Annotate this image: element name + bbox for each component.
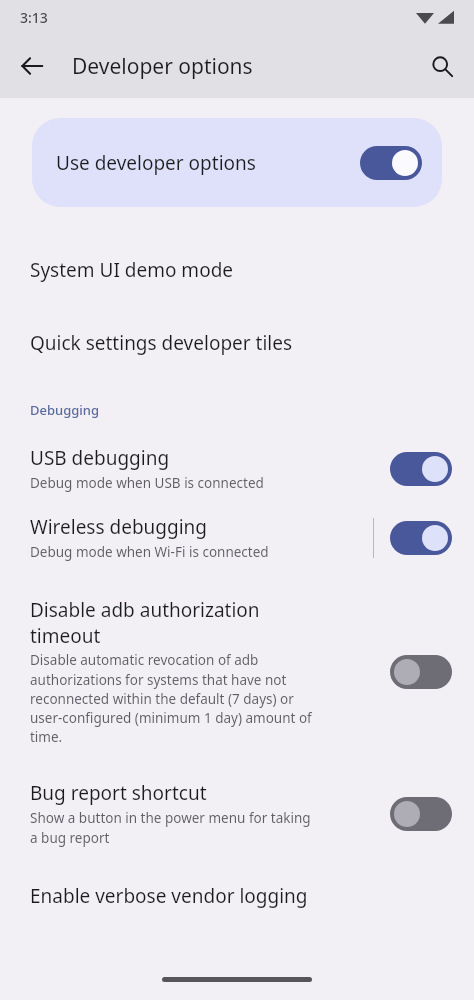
button[interactable]: Back [8, 42, 56, 90]
button[interactable]: On [390, 521, 452, 555]
button[interactable]: Use developer options [32, 118, 442, 207]
staticText: Bug report shortcut [30, 780, 207, 806]
staticText: Disable adb authorization timeout [30, 597, 260, 648]
button[interactable]: Search [418, 42, 466, 90]
staticText: Debug mode when Wi-Fi is connected [30, 543, 269, 561]
button[interactable]: Wireless debugging [0, 506, 474, 575]
button[interactable]: Off [390, 797, 452, 831]
button[interactable]: USB debugging [0, 439, 474, 506]
button[interactable]: System UI demo mode [0, 233, 474, 306]
staticText: Enable verbose vendor logging [30, 883, 308, 909]
staticText: Debugging [30, 401, 100, 419]
button[interactable]: On [390, 452, 452, 486]
staticText: USB debugging [30, 445, 170, 471]
staticText: Wireless debugging [30, 514, 208, 540]
button[interactable]: On [360, 146, 422, 180]
button[interactable]: Quick settings developer tiles [0, 306, 474, 379]
staticText: Debug mode when USB is connected [30, 474, 264, 492]
button[interactable]: Bug report shortcut [0, 758, 474, 861]
button[interactable]: Disable adb authorization timeout [0, 575, 474, 758]
staticText: Quick settings developer tiles [30, 330, 293, 356]
staticText: Developer options [72, 52, 253, 81]
staticText: Show a button in the power menu for taki… [30, 809, 311, 847]
staticText: Disable automatic revocation of adb auth… [30, 651, 312, 746]
staticText: Use developer options [56, 150, 360, 176]
button[interactable]: Off [390, 655, 452, 689]
staticText: 3:13 [20, 8, 48, 27]
staticText: System UI demo mode [30, 257, 234, 283]
